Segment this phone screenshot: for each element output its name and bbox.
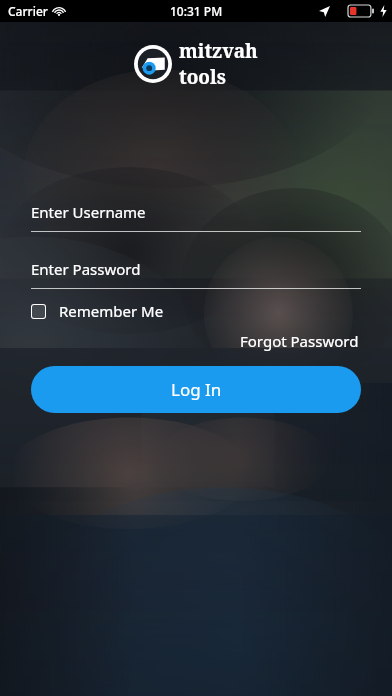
button[interactable]: Forgot Password <box>238 329 361 353</box>
button[interactable]: Remember Me <box>31 301 361 321</box>
staticText: Remember Me <box>59 301 164 321</box>
staticText: tools <box>179 64 226 90</box>
button[interactable]: Log In <box>31 366 361 413</box>
staticText: mitzvah <box>179 38 258 64</box>
staticText: Enter Password <box>31 259 141 279</box>
staticText: Enter Username <box>31 202 146 222</box>
button[interactable]: Enter Password <box>31 259 361 289</box>
staticText: Log In <box>171 378 222 401</box>
staticText: 10:31 PM <box>170 3 223 19</box>
staticText: Carrier <box>8 3 48 19</box>
button[interactable]: Enter Username <box>31 202 361 232</box>
